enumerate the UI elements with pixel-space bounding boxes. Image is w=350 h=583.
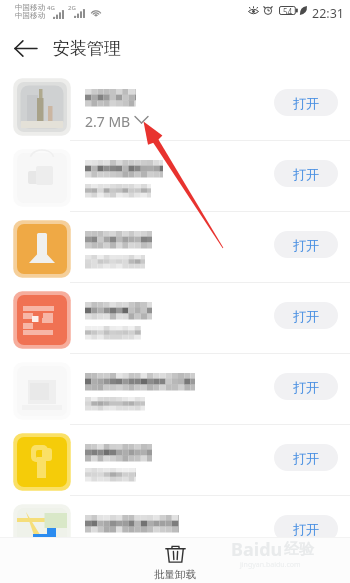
staticText: 中国移动: [15, 3, 45, 12]
staticText: 打开: [293, 166, 319, 182]
staticText: 54: [283, 6, 293, 15]
staticText: 打开: [293, 237, 319, 253]
staticText: 2.7 MB: [85, 112, 131, 131]
button[interactable]: 打开: [274, 89, 338, 116]
staticText: 中国移动: [15, 11, 45, 20]
button[interactable]: 打开: [0, 354, 350, 425]
button[interactable]: Back: [6, 26, 46, 70]
button[interactable]: 2.7 MB: [0, 70, 350, 141]
button[interactable]: 打开: [274, 231, 338, 258]
button[interactable]: 打开: [0, 496, 350, 567]
staticText: 2G: [68, 4, 76, 12]
staticText: 打开: [293, 308, 319, 324]
button[interactable]: 打开: [0, 425, 350, 496]
staticText: 打开: [293, 95, 319, 111]
button[interactable]: 打开: [0, 141, 350, 212]
staticText: 安装管理: [53, 38, 121, 59]
staticText: 22:31: [312, 5, 344, 22]
button[interactable]: 打开: [0, 283, 350, 354]
button[interactable]: 打开: [274, 515, 338, 542]
staticText: 4G: [47, 4, 55, 12]
staticText: 经验: [284, 540, 314, 559]
button[interactable]: 打开: [0, 212, 350, 283]
button[interactable]: 打开: [274, 160, 338, 187]
staticText: jingyan.baidu.com: [240, 560, 301, 570]
button[interactable]: 打开: [274, 302, 338, 329]
button[interactable]: 批量卸载: [0, 537, 350, 583]
staticText: 批量卸载: [154, 568, 196, 581]
button[interactable]: 打开: [274, 373, 338, 400]
staticText: 打开: [293, 521, 319, 537]
button[interactable]: 打开: [274, 444, 338, 471]
staticText: Baidu: [231, 537, 283, 562]
staticText: 打开: [293, 379, 319, 395]
staticText: 打开: [293, 450, 319, 466]
